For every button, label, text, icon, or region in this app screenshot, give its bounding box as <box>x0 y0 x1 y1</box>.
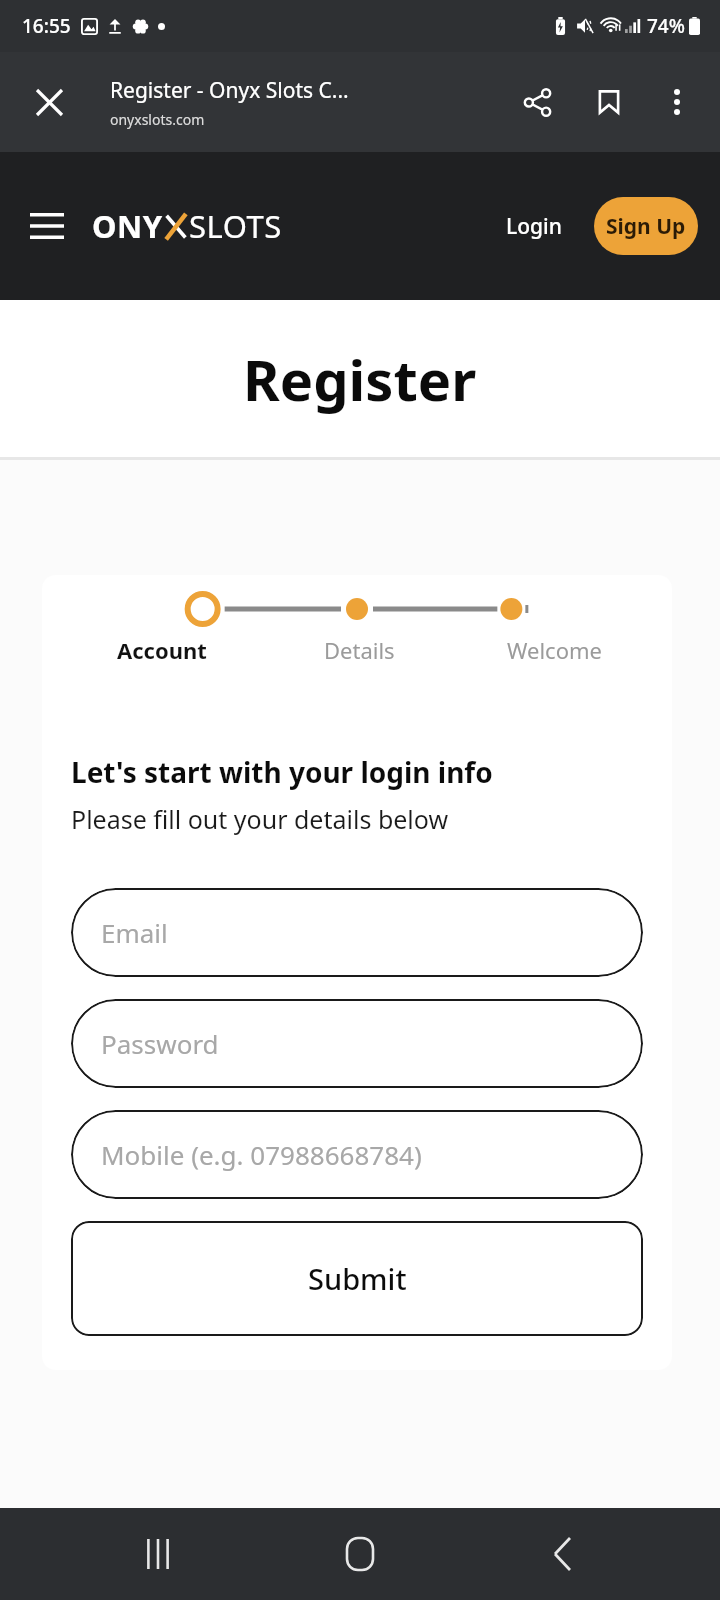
button[interactable]: Password <box>71 999 643 1088</box>
button[interactable]: Mobile (e.g. 07988668784) <box>71 1110 643 1199</box>
staticText: Sign Up <box>606 212 686 241</box>
button[interactable]: ONY <box>92 205 282 247</box>
button[interactable]: Bookmark <box>578 71 640 133</box>
staticText: Welcome <box>507 635 602 665</box>
button[interactable]: More options <box>648 73 706 131</box>
staticText: Mobile (e.g. 07988668784) <box>101 1137 422 1172</box>
staticText: Login <box>506 212 562 241</box>
staticText: onyxslots.com <box>110 110 205 129</box>
button[interactable]: Submit <box>71 1221 643 1336</box>
staticText: Register <box>243 341 477 417</box>
button[interactable]: Close <box>18 71 80 133</box>
staticText: Please fill out your details below <box>71 802 449 836</box>
button[interactable]: Menu <box>14 193 80 259</box>
staticText: Register - Onyx Slots C... <box>110 76 349 105</box>
staticText: SLOTS <box>189 205 282 247</box>
staticText: Details <box>324 635 395 665</box>
button[interactable]: Share <box>506 71 568 133</box>
staticText: Email <box>101 915 168 950</box>
staticText: 74% <box>647 13 685 39</box>
staticText: Submit <box>308 1259 407 1298</box>
button[interactable]: Recent apps <box>113 1509 203 1599</box>
staticText: Password <box>101 1026 219 1061</box>
staticText: Let's start with your login info <box>71 753 493 791</box>
button[interactable]: Login <box>496 202 572 251</box>
button[interactable]: Back <box>518 1509 608 1599</box>
staticText: ONY <box>92 205 163 247</box>
button[interactable]: Email <box>71 888 643 977</box>
button[interactable]: Home <box>315 1509 405 1599</box>
staticText: 16:55 <box>22 13 71 39</box>
button[interactable]: Sign Up <box>594 197 698 255</box>
staticText: Account <box>117 635 207 665</box>
